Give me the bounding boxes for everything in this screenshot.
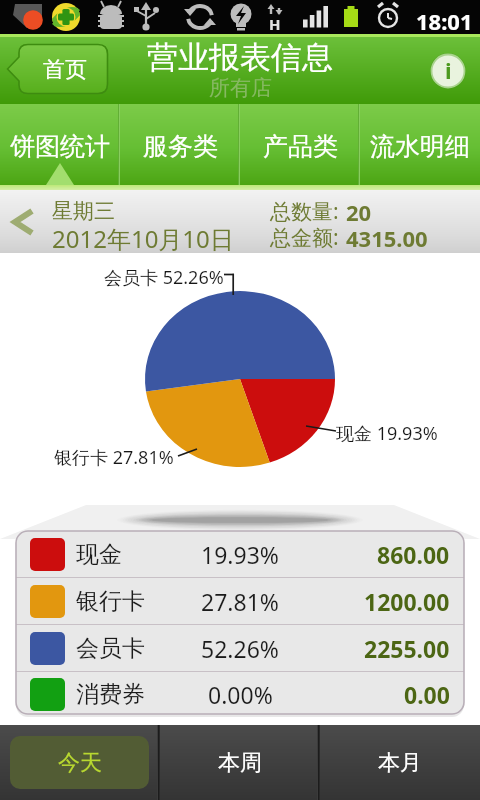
button[interactable]: 产品类 [240,104,360,185]
staticText: 产品类 [263,131,338,162]
staticText: 服务类 [143,131,218,162]
button[interactable]: 本月 [320,725,480,800]
button[interactable]: 服务类 [120,104,240,185]
staticText: 52.26% [201,633,279,664]
button[interactable]: Info [430,53,466,89]
staticText: 银行卡 [76,587,145,616]
button[interactable]: Previous day [12,209,34,235]
staticText: 2012年10月10日 [52,222,234,255]
staticText: 饼图统计 [10,131,110,162]
staticText: 今天 [58,749,102,777]
staticText: 会员卡 52.26% [104,265,224,290]
staticText: 4315.00 [346,223,428,253]
staticText: 本周 [218,749,262,777]
staticText: 总金额: [270,223,339,252]
staticText: i [445,55,452,85]
staticText: 营业报表信息 [147,38,333,77]
staticText: 总数量: [270,197,339,226]
button[interactable]: 今天 [0,725,160,800]
staticText: 20 [346,197,372,227]
button[interactable]: 首页 [6,43,109,95]
staticText: 0.00 [404,679,450,710]
staticText: 所有店 [209,75,272,101]
staticText: 27.81% [201,586,279,617]
staticText: 现金 19.93% [336,421,438,446]
staticText: 19.93% [201,539,279,570]
staticText: 首页 [43,56,87,84]
staticText: H [269,14,281,34]
staticText: 星期三 [52,198,115,224]
button[interactable]: 现金 [16,531,464,577]
staticText: 本月 [378,749,422,777]
button[interactable]: 消费券 [16,672,464,717]
button[interactable]: 银行卡 [16,578,464,624]
staticText: 0.00% [208,679,273,710]
staticText: 1200.00 [364,586,450,617]
button[interactable]: 饼图统计 [0,104,120,185]
staticText: 消费券 [76,680,145,709]
button[interactable]: 本周 [160,725,320,800]
button[interactable]: 会员卡 [16,625,464,671]
staticText: 流水明细 [370,131,470,162]
staticText: 2255.00 [364,633,450,664]
staticText: 860.00 [377,539,450,570]
staticText: 银行卡 27.81% [54,445,174,470]
staticText: 18:01 [416,6,473,36]
button[interactable]: 流水明细 [360,104,480,185]
staticText: 现金 [76,540,122,569]
staticText: 会员卡 [76,634,145,663]
